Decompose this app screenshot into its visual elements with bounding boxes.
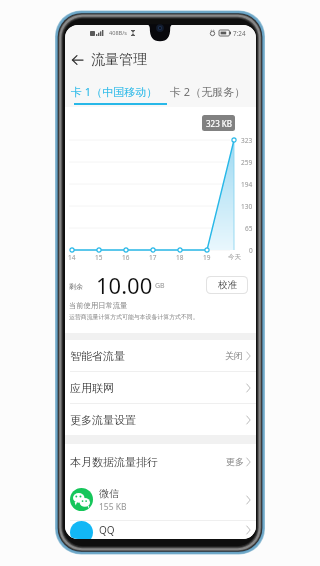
staticText: 130 [241, 202, 253, 211]
button[interactable]: 微信 [65, 479, 256, 520]
staticText: 流量管理 [91, 51, 147, 69]
staticText: 18 [176, 253, 184, 262]
staticText: 校准 [218, 279, 237, 291]
staticText: 卡 1（中国移动） [71, 84, 158, 99]
staticText: 19 [203, 253, 211, 262]
staticText: 7:24 [233, 29, 246, 38]
button[interactable]: 卡 2（无服务） [166, 79, 250, 103]
staticText: 15 [95, 253, 103, 262]
staticText: 本月数据流量排行 [70, 455, 158, 469]
staticText: 今天 [228, 253, 241, 261]
staticText: QQ [99, 523, 115, 537]
staticText: 194 [241, 180, 253, 189]
staticText: 14 [68, 253, 76, 262]
staticText: 0 [249, 246, 253, 255]
button[interactable]: 卡 1（中国移动） [67, 79, 162, 103]
staticText: 更多 [226, 456, 244, 467]
staticText: 更多流量设置 [70, 413, 136, 427]
button[interactable]: 更多流量设置 [65, 404, 256, 435]
staticText: 运营商流量计算方式可能与本设备计算方式不同。 [69, 313, 199, 320]
staticText: 微信 [99, 487, 119, 500]
staticText: 17 [149, 253, 157, 262]
button[interactable]: 本月数据流量排行 [65, 444, 256, 479]
staticText: 408B/s [109, 29, 127, 37]
button[interactable]: 智能省流量 [65, 340, 256, 371]
staticText: 16 [122, 253, 130, 262]
staticText: 323 KB [206, 118, 232, 129]
staticText: 关闭 [225, 350, 243, 361]
staticText: 155 KB [99, 501, 127, 513]
staticText: 10.00 [96, 270, 153, 294]
staticText: 323 [241, 136, 253, 145]
button[interactable]: Back [65, 45, 90, 75]
staticText: 应用联网 [70, 381, 114, 395]
button[interactable]: 校准 [207, 277, 247, 293]
button[interactable]: QQ [65, 521, 256, 539]
staticText: 259 [241, 158, 253, 167]
button[interactable]: 应用联网 [65, 372, 256, 403]
staticText: 当前使用日常流量 [69, 301, 128, 310]
staticText: 卡 2（无服务） [170, 84, 246, 99]
staticText: GB [155, 281, 165, 291]
staticText: 剩余 [69, 282, 83, 291]
staticText: 65 [245, 224, 253, 233]
staticText: 智能省流量 [70, 349, 125, 363]
